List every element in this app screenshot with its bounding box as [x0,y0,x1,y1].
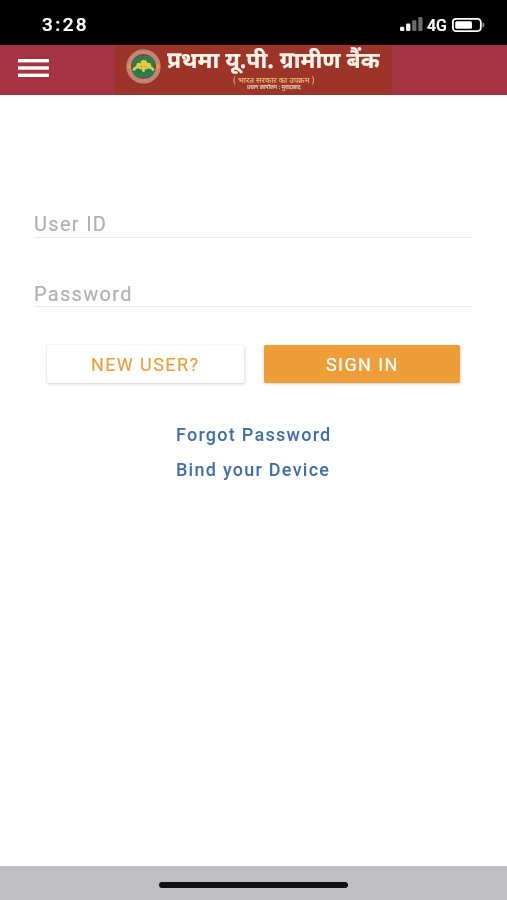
staticText: NEW USER? [91,354,200,375]
staticText: User ID [34,212,108,235]
button[interactable]: NEW USER? [47,345,244,383]
staticText: SIGN IN [326,354,399,375]
button[interactable]: SIGN IN [264,345,460,383]
staticText: Forgot Password [176,424,332,445]
staticText: प्रधान कार्यालय : मुरादाबाद [247,83,301,91]
staticText: Password [34,282,133,305]
staticText: 4G [427,16,447,35]
staticText: Bind your Device [176,459,331,480]
staticText: ( भारत सरकार का उपक्रम ) [233,74,315,85]
button[interactable]: Open navigation menu [9,44,57,92]
button[interactable]: Bind your Device [166,456,341,483]
staticText: 3:28 [42,13,90,35]
button[interactable]: Password [34,280,473,306]
staticText: प्रथमा यू.पी. ग्रामीण बैंक [167,43,380,74]
button[interactable]: User ID [34,210,473,236]
button[interactable]: Forgot Password [166,421,342,448]
